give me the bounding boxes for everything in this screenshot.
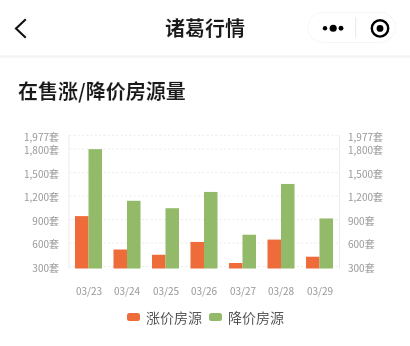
- button[interactable]: 涨价房源: [127, 306, 202, 328]
- staticText: 03/29: [295, 283, 345, 297]
- staticText: 600套: [9, 236, 59, 250]
- staticText: 03/25: [141, 283, 191, 297]
- staticText: 1,977套: [9, 129, 59, 143]
- staticText: 降价房源: [228, 307, 284, 327]
- staticText: 1,200套: [348, 189, 383, 203]
- staticText: 1,800套: [9, 142, 59, 156]
- button[interactable]: Close: [355, 12, 396, 43]
- button[interactable]: Back: [0, 8, 40, 48]
- staticText: 600套: [348, 236, 375, 250]
- staticText: 03/23: [64, 283, 114, 297]
- staticText: 诸葛行情: [165, 13, 245, 42]
- staticText: 在售涨/降价房源量: [18, 76, 186, 105]
- staticText: 03/24: [102, 283, 152, 297]
- staticText: 03/28: [256, 283, 306, 297]
- staticText: 900套: [348, 213, 375, 227]
- staticText: 1,500套: [348, 166, 383, 180]
- staticText: 涨价房源: [146, 307, 202, 327]
- staticText: 1,800套: [348, 142, 383, 156]
- button[interactable]: 降价房源: [209, 306, 284, 328]
- button[interactable]: More options: [307, 12, 355, 43]
- staticText: 03/27: [218, 283, 268, 297]
- staticText: 1,977套: [348, 129, 383, 143]
- staticText: 300套: [348, 260, 375, 274]
- staticText: 1,500套: [9, 166, 59, 180]
- staticText: 1,200套: [9, 189, 59, 203]
- staticText: 300套: [9, 260, 59, 274]
- staticText: 03/26: [179, 283, 229, 297]
- staticText: 900套: [9, 213, 59, 227]
